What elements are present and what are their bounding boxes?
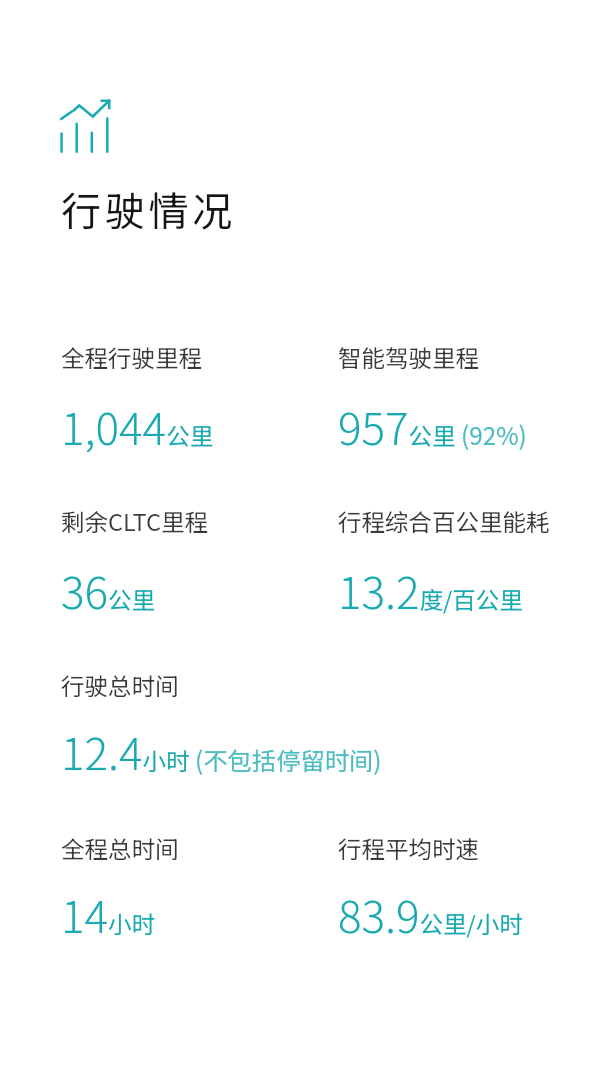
staticText: 行驶总时间 (61, 668, 179, 702)
button[interactable]: 行驶情况 (61, 180, 236, 238)
staticText: 83.9公里/小时 (338, 882, 523, 946)
staticText: 全程行驶里程 (61, 340, 202, 374)
button[interactable]: 剩余CLTC里程 (61, 504, 331, 622)
staticText: 智能驾驶里程 (338, 340, 479, 374)
staticText: 13.2度/百公里 (338, 558, 523, 622)
staticText: 行程综合百公里能耗 (338, 504, 550, 538)
staticText: 12.4小时 (不包括停留时间) (61, 719, 382, 783)
button[interactable]: 智能驾驶里程 (338, 340, 588, 458)
button[interactable]: 行程综合百公里能耗 (338, 504, 588, 622)
staticText: 全程总时间 (61, 831, 179, 865)
staticText: 1,044公里 (61, 394, 214, 458)
button[interactable]: 全程行驶里程 (61, 340, 331, 458)
staticText: 行程平均时速 (338, 831, 479, 865)
button[interactable]: 行程平均时速 (338, 831, 588, 946)
button[interactable]: 行驶总时间 (61, 668, 541, 783)
button[interactable]: Driving statistics (60, 97, 110, 153)
staticText: 14小时 (61, 882, 156, 946)
staticText: 957公里 (92%) (338, 394, 527, 458)
staticText: 36公里 (61, 558, 156, 622)
button[interactable]: 全程总时间 (61, 831, 331, 946)
staticText: 剩余CLTC里程 (61, 504, 208, 538)
